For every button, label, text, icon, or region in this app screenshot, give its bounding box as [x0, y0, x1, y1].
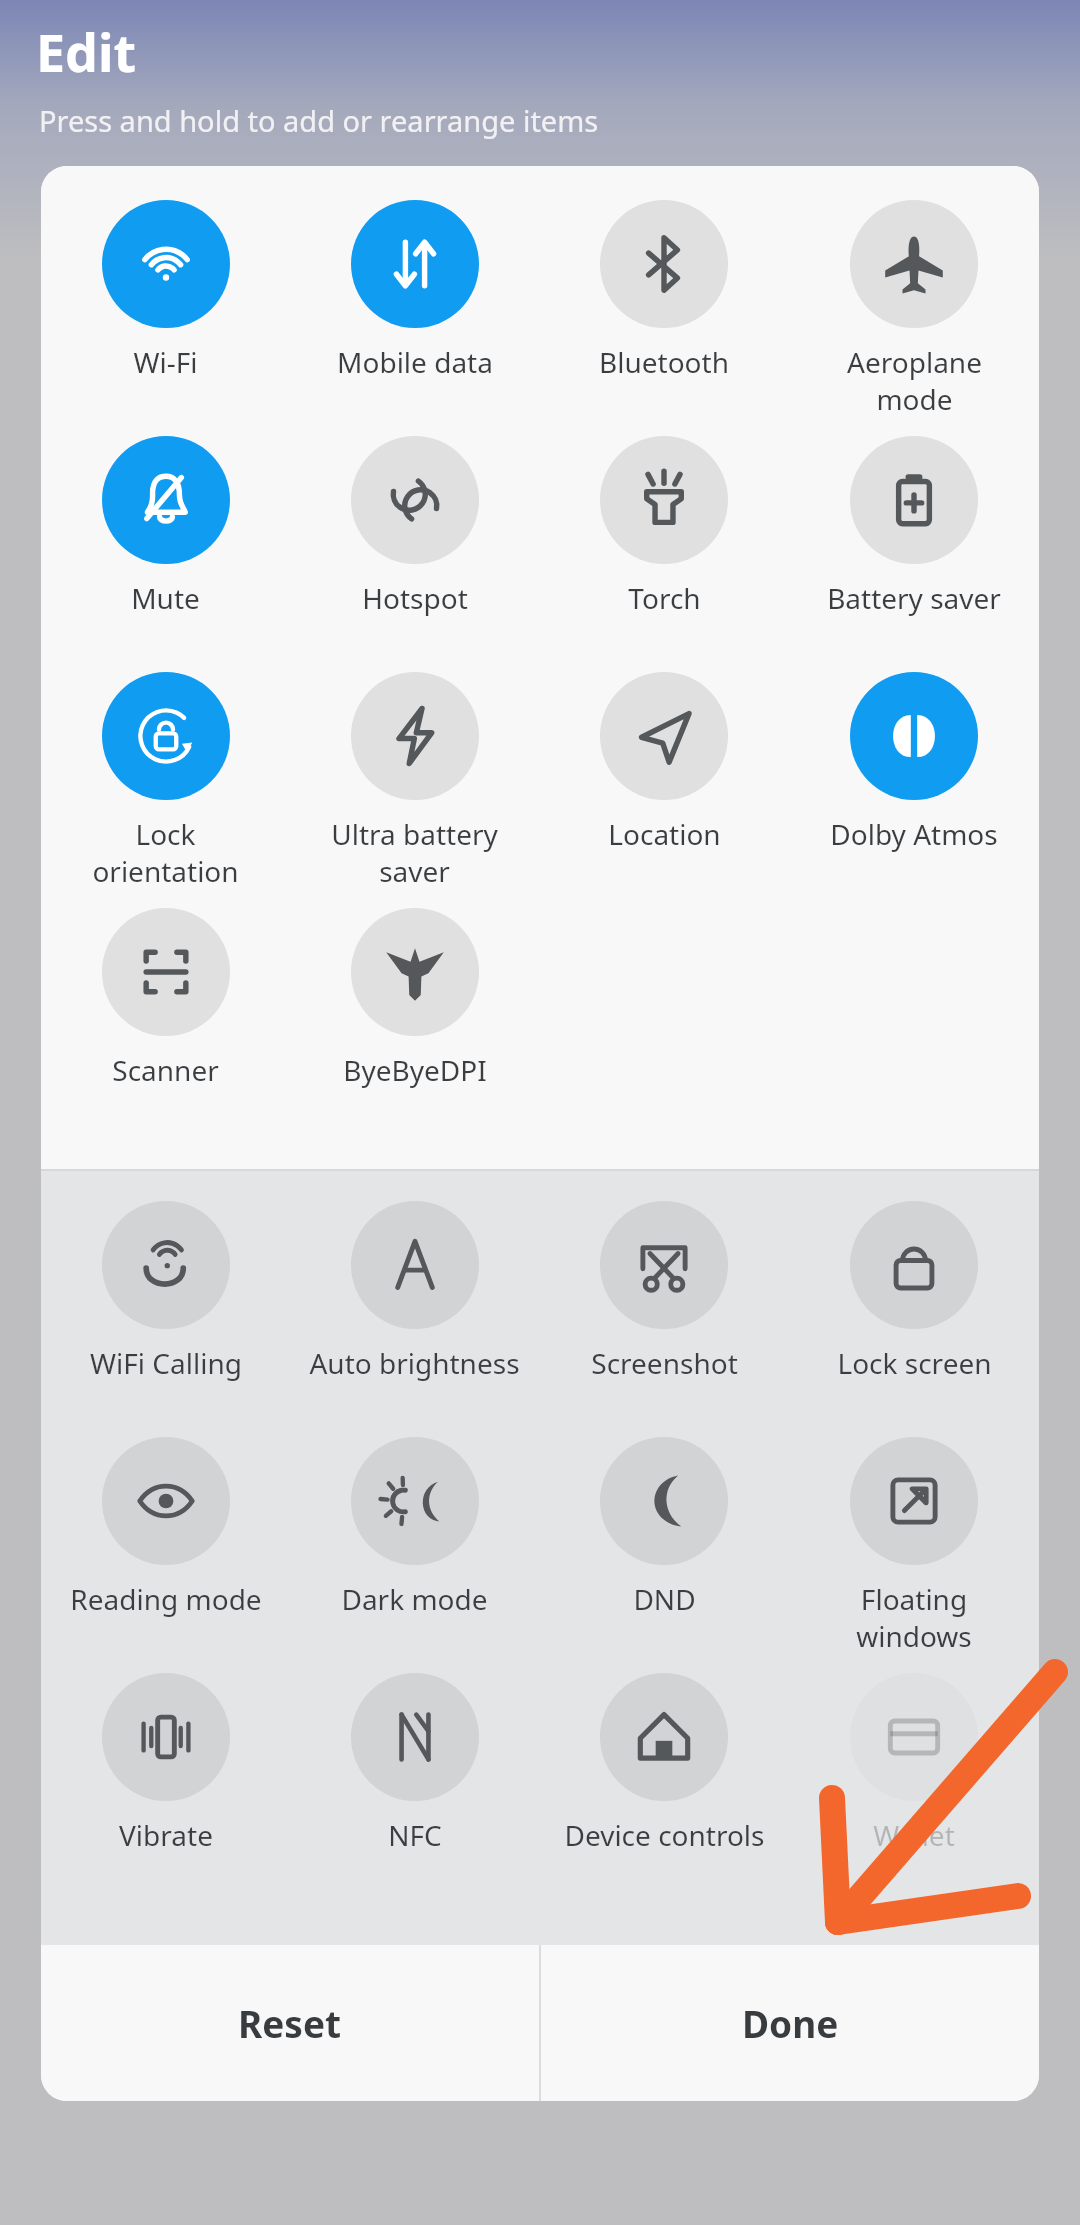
staticText: Floating windows — [856, 1580, 972, 1655]
staticText: NFC — [388, 1816, 442, 1854]
staticText: Bluetooth — [599, 343, 729, 381]
button[interactable]: Battery saver — [789, 420, 1039, 656]
button[interactable]: Ultra battery saver — [290, 656, 539, 892]
staticText: ByeByeDPI — [343, 1051, 487, 1089]
button[interactable]: Hotspot — [290, 420, 539, 656]
button[interactable]: Device controls — [539, 1657, 789, 1893]
staticText: Mute — [131, 579, 200, 617]
button[interactable]: NFC — [290, 1657, 539, 1893]
staticText: Press and hold to add or rearrange items — [39, 101, 599, 140]
button[interactable]: Bluetooth — [539, 184, 789, 420]
button[interactable]: Dolby Atmos — [789, 656, 1039, 892]
button[interactable]: DND — [539, 1421, 789, 1657]
button[interactable]: Floating windows — [789, 1421, 1039, 1657]
staticText: Auto brightness — [309, 1344, 520, 1382]
staticText: Battery saver — [827, 579, 1001, 617]
staticText: Wi-Fi — [133, 343, 198, 381]
staticText: Torch — [628, 579, 701, 617]
button[interactable]: Lock screen — [789, 1185, 1039, 1421]
staticText: Lock screen — [837, 1344, 992, 1382]
button[interactable]: Lock orientation — [41, 656, 290, 892]
button[interactable]: Wallet — [789, 1657, 1039, 1893]
button[interactable]: Vibrate — [41, 1657, 290, 1893]
staticText: Mobile data — [337, 343, 493, 381]
button[interactable]: Auto brightness — [290, 1185, 539, 1421]
staticText: Reset — [238, 1998, 342, 2048]
staticText: Screenshot — [591, 1344, 738, 1382]
staticText: Lock orientation — [92, 815, 239, 890]
staticText: WiFi Calling — [90, 1344, 242, 1382]
button[interactable]: Done — [541, 1945, 1039, 2101]
staticText: Wallet — [873, 1816, 955, 1854]
button[interactable]: Reading mode — [41, 1421, 290, 1657]
staticText: Scanner — [112, 1051, 219, 1089]
staticText: Dolby Atmos — [830, 815, 998, 853]
button[interactable]: Screenshot — [539, 1185, 789, 1421]
staticText: Dark mode — [341, 1580, 488, 1618]
staticText: Done — [742, 1998, 839, 2048]
button[interactable]: Reset — [41, 1945, 539, 2101]
staticText: Reading mode — [70, 1580, 262, 1618]
button[interactable]: Scanner — [41, 892, 290, 1128]
button[interactable]: ByeByeDPI — [290, 892, 539, 1128]
staticText: Hotspot — [362, 579, 468, 617]
button[interactable]: Mute — [41, 420, 290, 656]
staticText: DND — [633, 1580, 696, 1618]
staticText: Ultra battery saver — [331, 815, 498, 890]
staticText: Edit — [36, 16, 137, 87]
staticText: Device controls — [564, 1816, 765, 1854]
staticText: Location — [608, 815, 721, 853]
button[interactable]: Location — [539, 656, 789, 892]
staticText: Aeroplane mode — [847, 343, 982, 418]
button[interactable]: Mobile data — [290, 184, 539, 420]
button[interactable]: WiFi Calling — [41, 1185, 290, 1421]
button[interactable]: Torch — [539, 420, 789, 656]
button[interactable]: Aeroplane mode — [789, 184, 1039, 420]
button[interactable]: Dark mode — [290, 1421, 539, 1657]
button[interactable]: Wi-Fi — [41, 184, 290, 420]
staticText: Vibrate — [119, 1816, 213, 1854]
